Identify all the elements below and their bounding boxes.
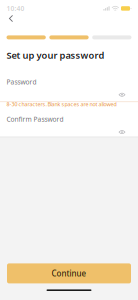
staticText: Set up your password [6,49,104,61]
button[interactable]: Back [2,11,19,26]
staticText: 8-30 characters. Blank spaces are not al… [6,101,116,108]
button[interactable]: Show confirm password [115,127,129,138]
staticText: Confirm Password [6,115,63,124]
button[interactable]: Continue [7,263,131,283]
button[interactable]: Show password [115,89,129,100]
staticText: 10:40 [6,4,24,13]
staticText: Password [6,77,36,86]
staticText: Continue [51,268,86,279]
